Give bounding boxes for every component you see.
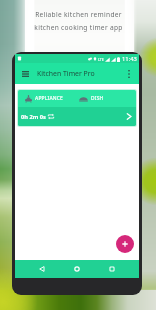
staticText: LTE	[98, 57, 104, 62]
button[interactable]: More options	[122, 67, 135, 80]
button[interactable]: Navigation menu	[19, 67, 32, 80]
staticText: 0h 2m 0s	[21, 113, 46, 121]
button[interactable]: Add timer	[116, 235, 134, 253]
button[interactable]: Recent apps	[104, 261, 120, 277]
staticText: APPLIANCE	[35, 95, 63, 102]
button[interactable]: DISH	[69, 90, 114, 107]
staticText: 11:43	[122, 55, 137, 63]
staticText: DISH	[91, 95, 104, 102]
staticText: Reliable kitchen reminder	[35, 10, 122, 19]
button[interactable]: Back	[34, 261, 50, 277]
button[interactable]: 0h 2m 0s	[18, 107, 136, 126]
staticText: Kitchen Timer Pro	[37, 69, 95, 78]
button[interactable]: Home	[69, 261, 85, 277]
button[interactable]: APPLIANCE	[18, 90, 69, 107]
staticText: kitchen cooking timer app	[34, 23, 123, 32]
